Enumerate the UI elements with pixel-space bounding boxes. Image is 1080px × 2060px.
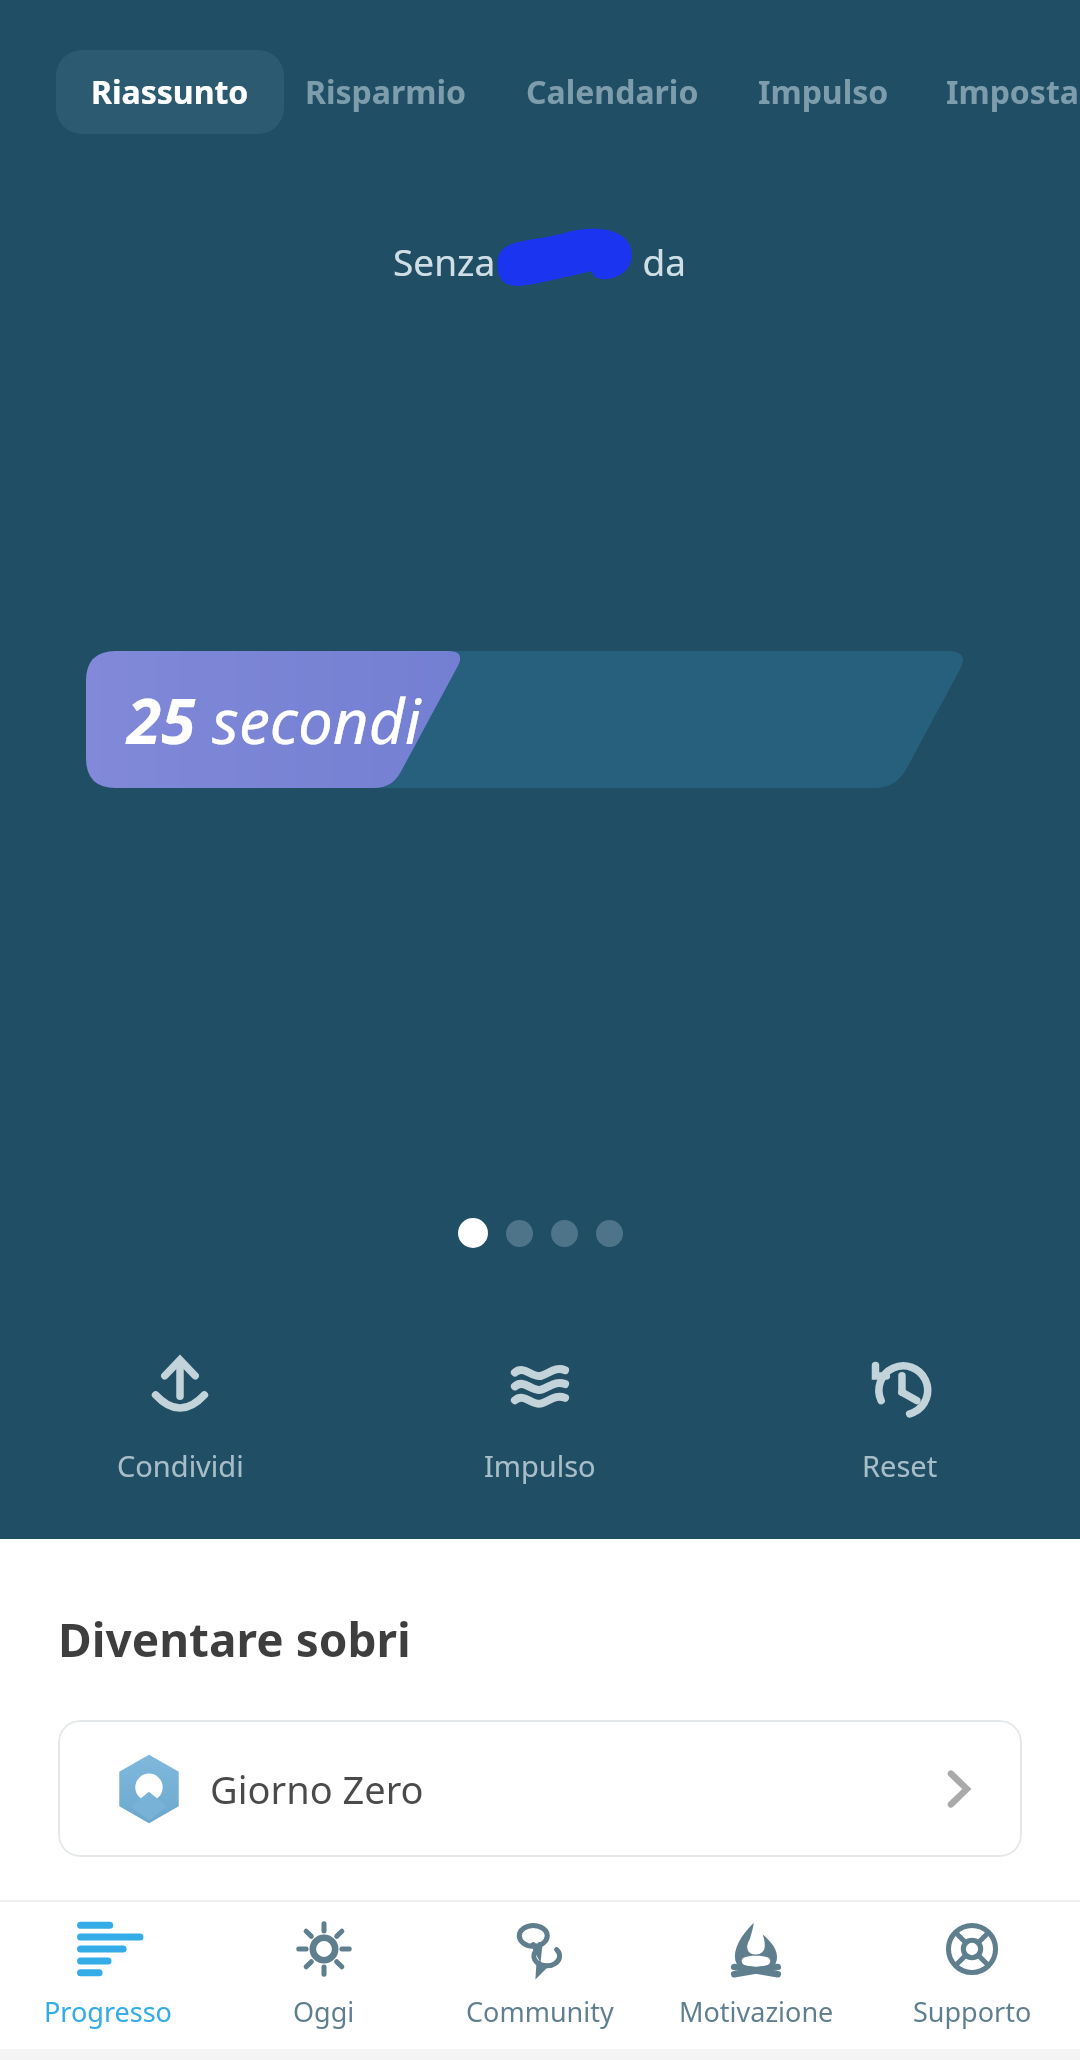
button[interactable]: Page indicator <box>551 1220 578 1247</box>
button[interactable]: Impulso <box>360 1348 720 1491</box>
button[interactable]: Page indicator <box>506 1220 533 1247</box>
button[interactable]: Giorno Zero <box>58 1720 1022 1857</box>
staticText: Calendario <box>526 70 699 114</box>
button[interactable]: Risparmio <box>270 50 502 134</box>
staticText: Giorno Zero <box>210 1763 424 1815</box>
staticText: Impulso <box>484 1446 596 1485</box>
button[interactable]: Impulso <box>723 50 924 134</box>
staticText: Impulso <box>758 70 889 114</box>
staticText: Senza <box>393 236 496 286</box>
staticText: Progresso <box>44 1993 172 2030</box>
staticText: da <box>633 236 687 286</box>
button[interactable]: Impostazioni <box>911 50 1080 134</box>
button[interactable]: Community <box>432 1917 648 2034</box>
staticText: Impostazioni <box>946 70 1080 114</box>
button[interactable]: Page indicator <box>458 1218 488 1248</box>
staticText: Diventare sobri <box>58 1608 411 1671</box>
staticText: Community <box>466 1993 614 2030</box>
button[interactable]: Page indicator <box>596 1220 623 1247</box>
staticText: Supporto <box>913 1993 1032 2030</box>
staticText: Reset <box>862 1446 938 1485</box>
staticText: secondi <box>196 678 421 762</box>
button[interactable]: Oggi <box>216 1917 432 2034</box>
staticText: 25 <box>127 678 196 762</box>
button[interactable]: Reset <box>720 1348 1080 1491</box>
button[interactable]: Calendario <box>491 50 734 134</box>
button[interactable]: Motivazione <box>648 1917 864 2034</box>
button[interactable]: Supporto <box>864 1917 1080 2034</box>
button[interactable]: Condividi <box>0 1348 360 1491</box>
staticText: Riassunto <box>91 70 249 114</box>
staticText: Oggi <box>293 1993 355 2030</box>
staticText: Condividi <box>117 1446 244 1485</box>
staticText: Risparmio <box>305 70 467 114</box>
button[interactable]: Riassunto <box>56 50 284 134</box>
staticText: Motivazione <box>679 1993 834 2030</box>
button[interactable]: Progresso <box>0 1917 216 2034</box>
